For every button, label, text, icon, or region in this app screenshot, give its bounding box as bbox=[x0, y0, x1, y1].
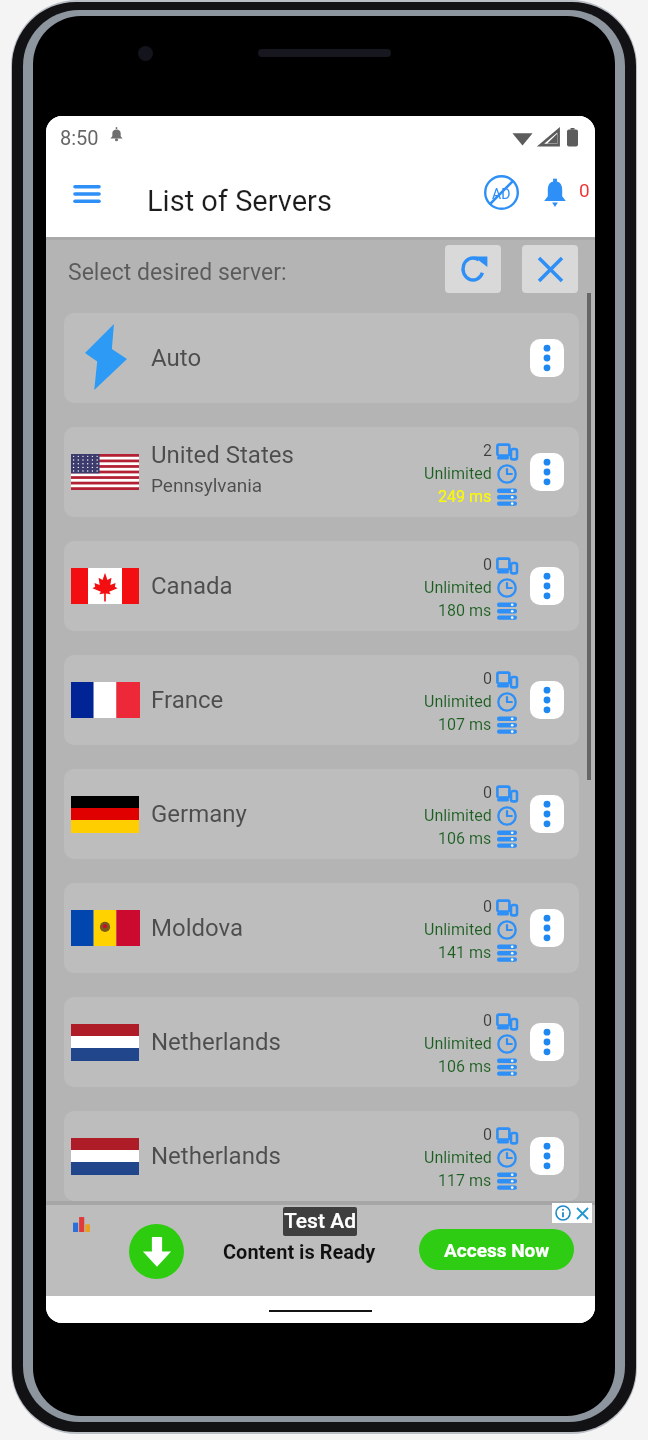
staticText: 106 ms bbox=[438, 829, 492, 848]
button[interactable]: Germany bbox=[64, 769, 579, 859]
button[interactable]: Refresh bbox=[445, 245, 501, 293]
button[interactable]: More options bbox=[530, 339, 564, 377]
staticText: 141 ms bbox=[438, 943, 492, 962]
staticText: List of Servers bbox=[147, 184, 332, 218]
button[interactable]: More options bbox=[530, 795, 564, 833]
staticText: Netherlands bbox=[151, 1028, 281, 1056]
staticText: 2 bbox=[483, 441, 492, 460]
button[interactable]: Notifications bbox=[530, 169, 580, 219]
staticText: Auto bbox=[151, 344, 202, 372]
staticText: 180 ms bbox=[438, 601, 492, 620]
button[interactable]: More options bbox=[530, 909, 564, 947]
button[interactable]: Netherlands bbox=[64, 1111, 579, 1201]
staticText: Unlimited bbox=[424, 578, 492, 597]
staticText: Moldova bbox=[151, 914, 244, 942]
staticText: Unlimited bbox=[424, 920, 492, 939]
button[interactable]: United States bbox=[64, 427, 579, 517]
staticText: 0 bbox=[483, 555, 492, 574]
staticText: 0 bbox=[483, 1125, 492, 1144]
staticText: 0 bbox=[483, 669, 492, 688]
button[interactable]: More options bbox=[530, 681, 564, 719]
button[interactable]: More options bbox=[530, 567, 564, 605]
staticText: 249 ms bbox=[438, 487, 492, 506]
button[interactable]: Auto bbox=[64, 313, 579, 403]
staticText: Content is Ready bbox=[223, 1240, 376, 1263]
staticText: 106 ms bbox=[438, 1057, 492, 1076]
button[interactable]: Access Now bbox=[419, 1229, 574, 1270]
button[interactable]: More options bbox=[530, 453, 564, 491]
staticText: Pennsylvania bbox=[151, 474, 263, 496]
staticText: 0 bbox=[483, 1011, 492, 1030]
staticText: Germany bbox=[151, 800, 247, 828]
staticText: Netherlands bbox=[151, 1142, 281, 1170]
staticText: Select desired server: bbox=[68, 259, 287, 286]
staticText: 0 bbox=[483, 897, 492, 916]
button[interactable]: Canada bbox=[64, 541, 579, 631]
button[interactable]: More options bbox=[530, 1137, 564, 1175]
staticText: AD bbox=[492, 186, 511, 202]
button[interactable]: Moldova bbox=[64, 883, 579, 973]
staticText: Unlimited bbox=[424, 806, 492, 825]
button[interactable]: Download bbox=[129, 1224, 184, 1279]
staticText: Canada bbox=[151, 572, 233, 600]
button[interactable]: Menu bbox=[61, 168, 113, 220]
staticText: United States bbox=[151, 441, 294, 469]
button[interactable]: Close bbox=[522, 245, 578, 293]
staticText: Unlimited bbox=[424, 1034, 492, 1053]
staticText: 0 bbox=[579, 179, 590, 201]
staticText: 107 ms bbox=[438, 715, 492, 734]
button[interactable]: More options bbox=[530, 1023, 564, 1061]
button[interactable]: Netherlands bbox=[64, 997, 579, 1087]
staticText: France bbox=[151, 686, 224, 714]
staticText: 0 bbox=[483, 783, 492, 802]
staticText: Unlimited bbox=[424, 464, 492, 483]
staticText: Test Ad bbox=[284, 1209, 357, 1234]
staticText: Unlimited bbox=[424, 1148, 492, 1167]
button[interactable]: France bbox=[64, 655, 579, 745]
staticText: Unlimited bbox=[424, 692, 492, 711]
staticText: 8:50 bbox=[60, 126, 99, 149]
staticText: 117 ms bbox=[438, 1171, 492, 1190]
button[interactable]: Remove ads bbox=[476, 167, 526, 217]
staticText: Access Now bbox=[444, 1239, 550, 1261]
